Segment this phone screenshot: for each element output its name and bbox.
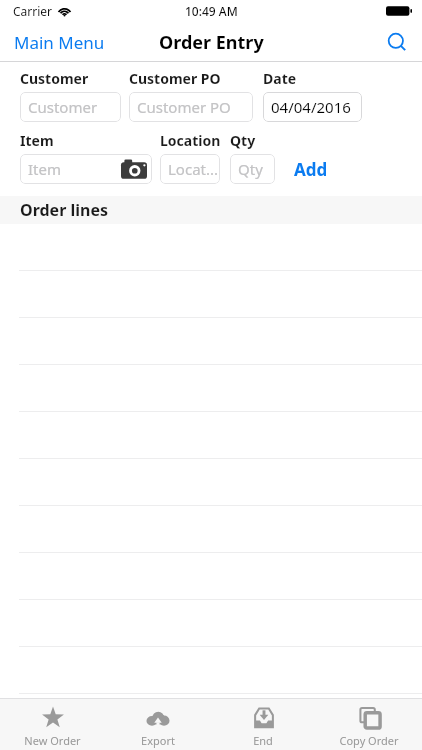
- button[interactable]: Item: [20, 154, 152, 184]
- staticText: Copy Order: [339, 733, 399, 748]
- button[interactable]: Customer PO: [129, 92, 253, 122]
- button[interactable]: Locat...: [160, 154, 220, 184]
- staticText: Location: [160, 131, 221, 150]
- button[interactable]: 04/04/2016: [263, 92, 362, 122]
- button[interactable]: End: [210, 699, 316, 750]
- staticText: Export: [141, 733, 175, 748]
- staticText: Customer PO: [137, 97, 231, 117]
- staticText: Item: [28, 159, 61, 179]
- button[interactable]: Copy Order: [316, 699, 422, 750]
- staticText: Qty: [230, 131, 256, 150]
- staticText: Order Entry: [159, 30, 264, 55]
- staticText: Customer: [28, 97, 98, 117]
- staticText: Locat...: [168, 159, 219, 179]
- button[interactable]: Customer: [20, 92, 121, 122]
- staticText: Date: [263, 69, 297, 88]
- staticText: 04/04/2016: [271, 97, 351, 117]
- button[interactable]: Export: [105, 699, 210, 750]
- button[interactable]: Add: [292, 154, 330, 184]
- staticText: 10:49 AM: [185, 3, 238, 19]
- staticText: Add: [294, 158, 328, 181]
- button[interactable]: Main Menu: [0, 22, 119, 62]
- staticText: New Order: [24, 733, 81, 748]
- staticText: Order lines: [20, 199, 109, 221]
- button[interactable]: Qty: [230, 154, 275, 184]
- staticText: End: [253, 733, 273, 748]
- staticText: Item: [20, 131, 54, 150]
- staticText: Main Menu: [14, 31, 105, 54]
- staticText: Qty: [238, 159, 263, 179]
- staticText: Carrier: [13, 3, 53, 19]
- button[interactable]: Search: [373, 22, 422, 62]
- button[interactable]: Scan item with camera: [121, 159, 147, 180]
- staticText: Customer: [20, 69, 89, 88]
- staticText: Customer PO: [129, 69, 221, 88]
- button[interactable]: New Order: [0, 699, 105, 750]
